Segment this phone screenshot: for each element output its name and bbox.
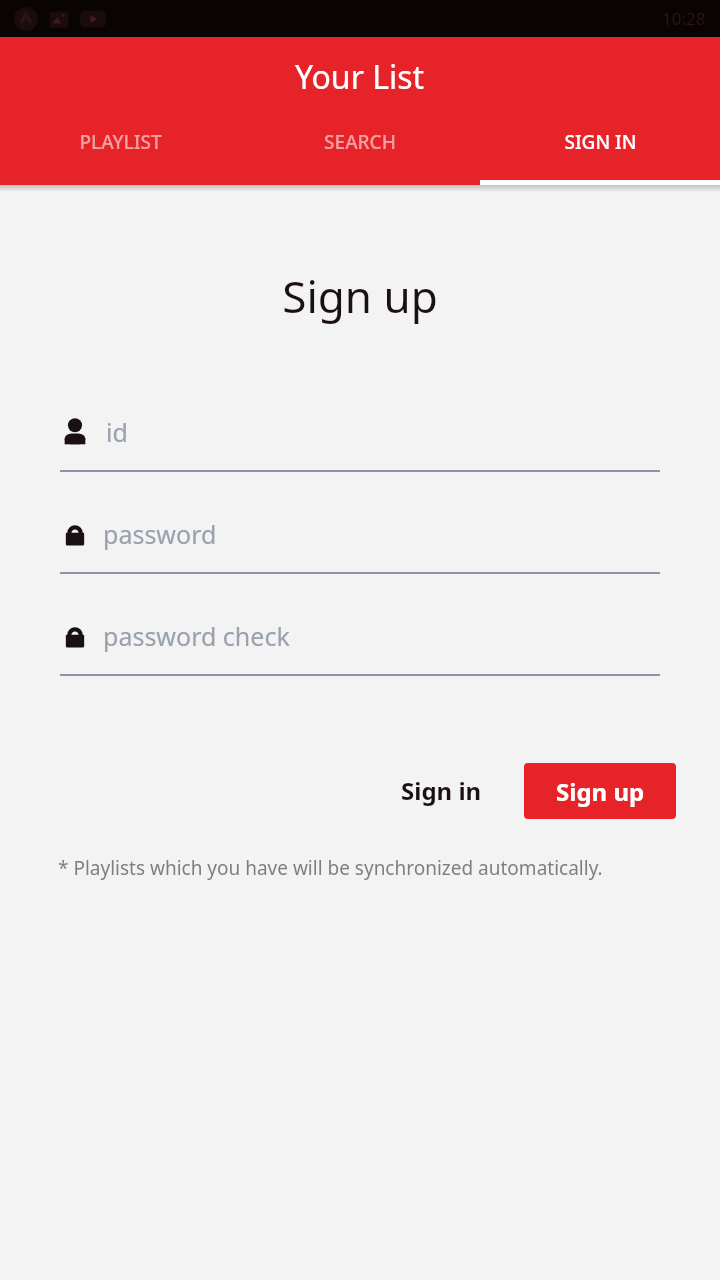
button[interactable]: User bbox=[60, 408, 660, 472]
button[interactable]: PLAYLIST bbox=[0, 129, 240, 155]
staticText: PLAYLIST bbox=[79, 129, 162, 155]
staticText: SIGN IN bbox=[564, 129, 637, 155]
staticText: Sign up bbox=[0, 266, 720, 326]
other: Password bbox=[60, 519, 90, 549]
button[interactable]: SEARCH bbox=[240, 129, 480, 155]
button[interactable]: Sign in bbox=[383, 760, 500, 821]
staticText: Sign in bbox=[401, 774, 482, 807]
staticText: 10:28 bbox=[662, 7, 706, 30]
other: User bbox=[60, 417, 90, 447]
other: Password bbox=[60, 621, 90, 651]
button[interactable]: Password bbox=[60, 612, 660, 676]
staticText: * Playlists which you have will be synch… bbox=[58, 855, 603, 881]
staticText: SEARCH bbox=[324, 129, 396, 155]
staticText: password check bbox=[103, 619, 290, 653]
button[interactable]: SIGN IN bbox=[480, 129, 720, 155]
staticText: id bbox=[106, 415, 128, 449]
staticText: Sign up bbox=[556, 775, 645, 808]
staticText: Your List bbox=[295, 55, 425, 99]
button[interactable]: Password bbox=[60, 510, 660, 574]
button[interactable]: Sign up bbox=[524, 763, 676, 819]
staticText: password bbox=[103, 517, 217, 551]
